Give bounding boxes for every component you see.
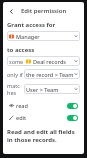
button[interactable]: some xyxy=(7,56,80,66)
staticText: User > Team xyxy=(26,86,74,93)
staticText: only if xyxy=(7,71,23,78)
button[interactable]: User > Team xyxy=(24,84,80,94)
staticText: Manager xyxy=(16,33,74,40)
staticText: to access xyxy=(7,46,35,54)
staticText: edit xyxy=(16,114,67,121)
staticText: read xyxy=(16,102,67,109)
staticText: some xyxy=(9,58,24,65)
button[interactable]: Toggle on xyxy=(67,103,78,109)
staticText: matches xyxy=(7,82,23,96)
button[interactable]: the record > Team xyxy=(24,69,80,79)
button[interactable]: edit xyxy=(7,113,80,122)
button[interactable]: Back xyxy=(7,7,16,16)
button[interactable]: read xyxy=(7,101,80,110)
staticText: Deal records xyxy=(33,58,74,65)
staticText: Edit permission xyxy=(21,7,67,15)
button[interactable]: Manager xyxy=(7,31,80,41)
staticText: the record > Team xyxy=(26,71,74,78)
staticText: Read and edit all fields in those record… xyxy=(7,128,80,144)
button[interactable]: Toggle on xyxy=(67,115,78,121)
staticText: Grant access for xyxy=(7,21,56,29)
